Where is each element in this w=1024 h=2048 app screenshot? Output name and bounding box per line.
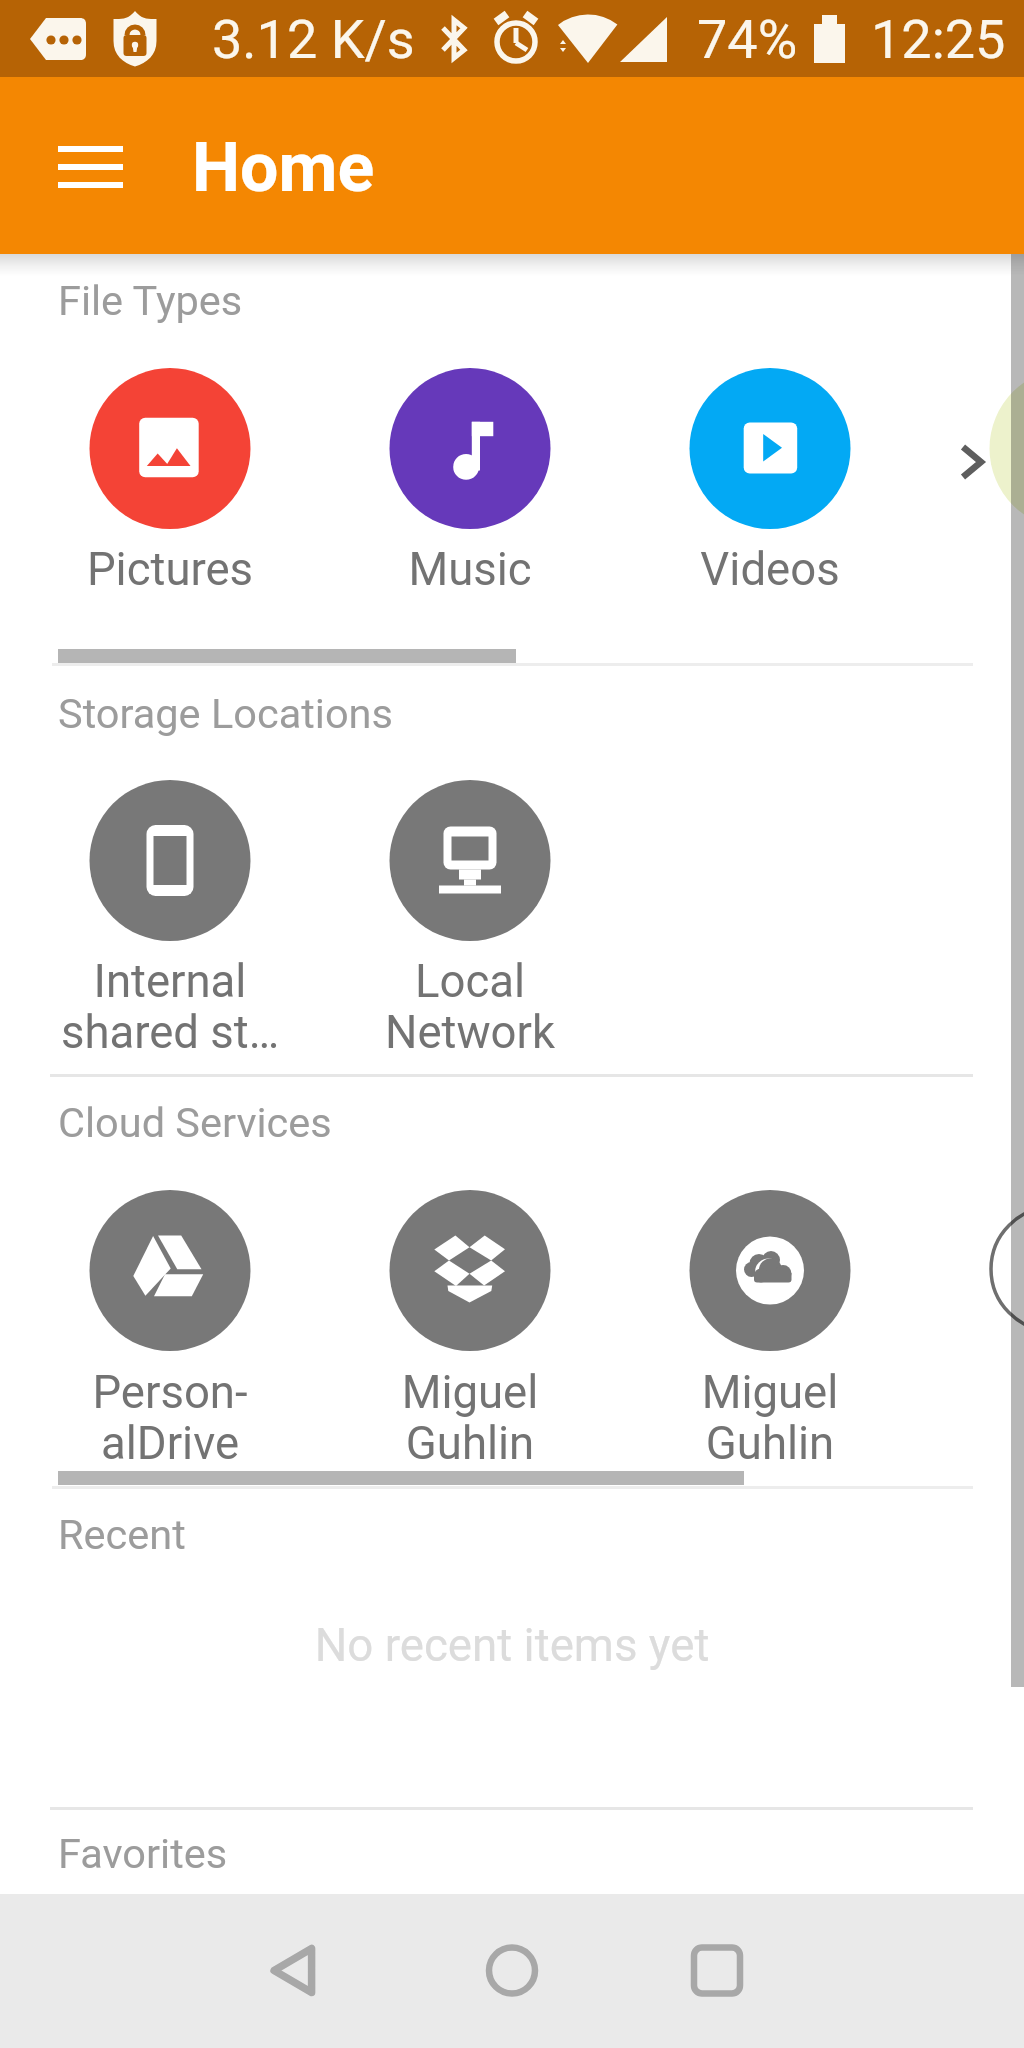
button[interactable]: Music bbox=[320, 350, 620, 580]
staticText: 12:25 bbox=[871, 8, 1006, 71]
button[interactable]: Recent apps bbox=[642, 1919, 792, 2024]
staticText: Music bbox=[320, 543, 620, 596]
button[interactable]: More bbox=[920, 350, 1024, 580]
button[interactable]: Home bbox=[437, 1919, 587, 2024]
staticText: Internal bbox=[20, 955, 320, 1008]
button[interactable]: Pictures bbox=[20, 350, 320, 580]
staticText: Local bbox=[320, 955, 620, 1008]
staticText: File Types bbox=[58, 276, 243, 325]
staticText: 74% bbox=[697, 8, 798, 71]
button[interactable]: Internal bbox=[20, 762, 320, 992]
staticText: Recent bbox=[58, 1510, 186, 1559]
button[interactable]: Videos bbox=[620, 350, 920, 580]
staticText: Home bbox=[192, 128, 375, 208]
staticText: Miguel bbox=[620, 1366, 920, 1419]
button[interactable]: Local bbox=[320, 762, 620, 992]
staticText: shared st… bbox=[20, 1006, 320, 1059]
button[interactable]: Person- bbox=[20, 1172, 320, 1402]
staticText: Guhlin bbox=[320, 1417, 620, 1470]
staticText: Favorites bbox=[58, 1829, 228, 1878]
staticText: Person- bbox=[20, 1366, 320, 1419]
staticText: Pictures bbox=[20, 543, 320, 596]
staticText: alDrive bbox=[20, 1417, 320, 1470]
button[interactable]: Open navigation drawer bbox=[33, 119, 148, 212]
button[interactable]: Miguel bbox=[320, 1172, 620, 1402]
button[interactable]: More file types bbox=[930, 400, 1020, 520]
staticText: 3.12 K/s bbox=[212, 8, 415, 71]
staticText: Storage Locations bbox=[58, 689, 393, 738]
button[interactable]: Back bbox=[216, 1919, 366, 2024]
staticText: Guhlin bbox=[620, 1417, 920, 1470]
staticText: Network bbox=[320, 1006, 620, 1059]
staticText: No recent items yet bbox=[62, 1619, 962, 1673]
staticText: Miguel bbox=[320, 1366, 620, 1419]
staticText: Videos bbox=[620, 543, 920, 596]
button[interactable]: Miguel bbox=[620, 1172, 920, 1402]
staticText: Cloud Services bbox=[58, 1098, 332, 1147]
